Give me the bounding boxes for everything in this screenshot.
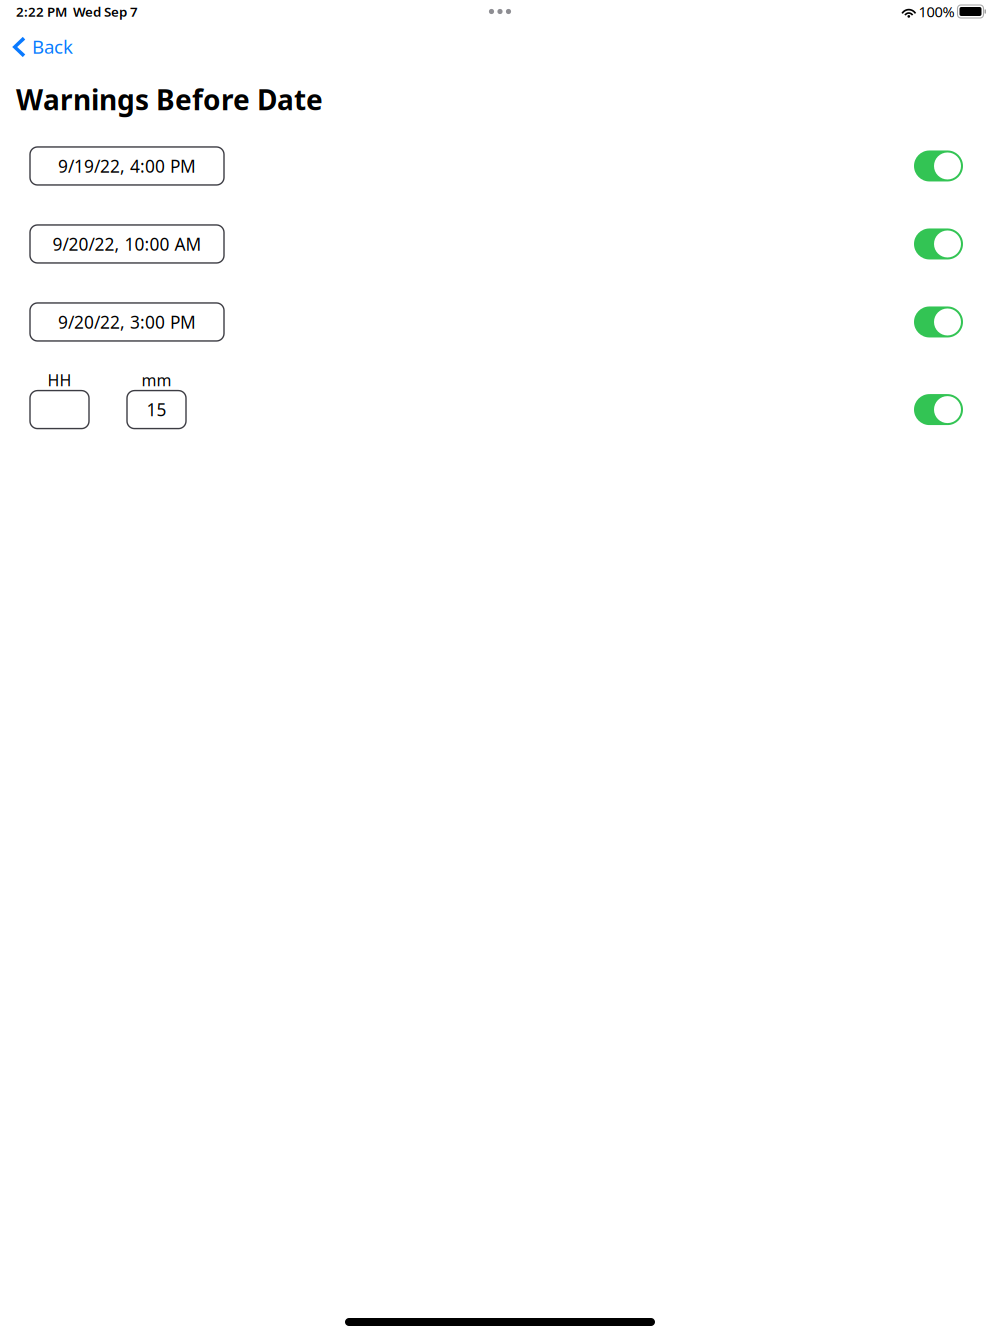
staticText: Warnings Before Date bbox=[16, 81, 323, 118]
staticText: 15 bbox=[146, 398, 166, 421]
button[interactable]: 9/19/22, 4:00 PM bbox=[30, 147, 224, 185]
button[interactable]: 9/20/22, 10:00 AM bbox=[30, 225, 224, 263]
staticText: 9/20/22, 10:00 AM bbox=[52, 232, 201, 255]
staticText: 100% bbox=[918, 2, 954, 21]
staticText: Wed Sep 7 bbox=[73, 3, 138, 20]
staticText: 9/20/22, 3:00 PM bbox=[58, 310, 196, 333]
button[interactable]: 15 bbox=[127, 391, 186, 429]
staticText: HH bbox=[47, 369, 71, 390]
button[interactable]: Enable warning for 9/20/22, 3:00 PM bbox=[914, 306, 963, 337]
staticText: 2:22 PM bbox=[16, 3, 67, 20]
staticText: Back bbox=[32, 34, 73, 59]
button[interactable]: 9/20/22, 3:00 PM bbox=[30, 303, 224, 341]
staticText: 9/19/22, 4:00 PM bbox=[58, 154, 196, 177]
button[interactable]: Back bbox=[0, 23, 83, 66]
staticText: mm bbox=[141, 369, 171, 390]
button[interactable]: Enable warning for 9/19/22, 4:00 PM bbox=[914, 150, 963, 181]
button[interactable]: Enable relative warning bbox=[914, 394, 963, 425]
button[interactable]: Enable warning for 9/20/22, 10:00 AM bbox=[914, 228, 963, 259]
button[interactable] bbox=[30, 391, 89, 429]
